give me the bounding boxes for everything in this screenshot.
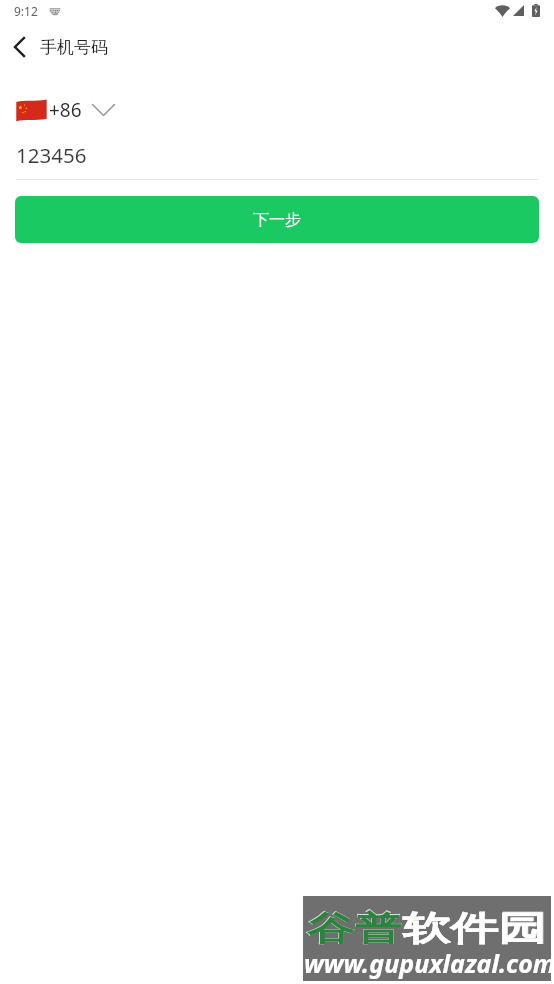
staticText: 谷普 (307, 908, 402, 949)
staticText: 9:12 (14, 3, 38, 19)
button[interactable]: 123456 (16, 132, 538, 179)
staticText: +86 (49, 97, 82, 123)
staticText: 手机号码 (40, 37, 108, 58)
staticText: www.gupuxlazal.com (304, 946, 552, 980)
staticText: 谷普 (306, 907, 402, 950)
staticText: 123456 (16, 141, 87, 169)
staticText: 软件园 (402, 907, 547, 950)
button[interactable]: +86 (15, 97, 115, 123)
button[interactable]: Back (0, 27, 39, 66)
button[interactable]: 下一步 (15, 196, 539, 243)
staticText: 下一步 (253, 210, 301, 230)
staticText: 软件园 (402, 908, 546, 949)
